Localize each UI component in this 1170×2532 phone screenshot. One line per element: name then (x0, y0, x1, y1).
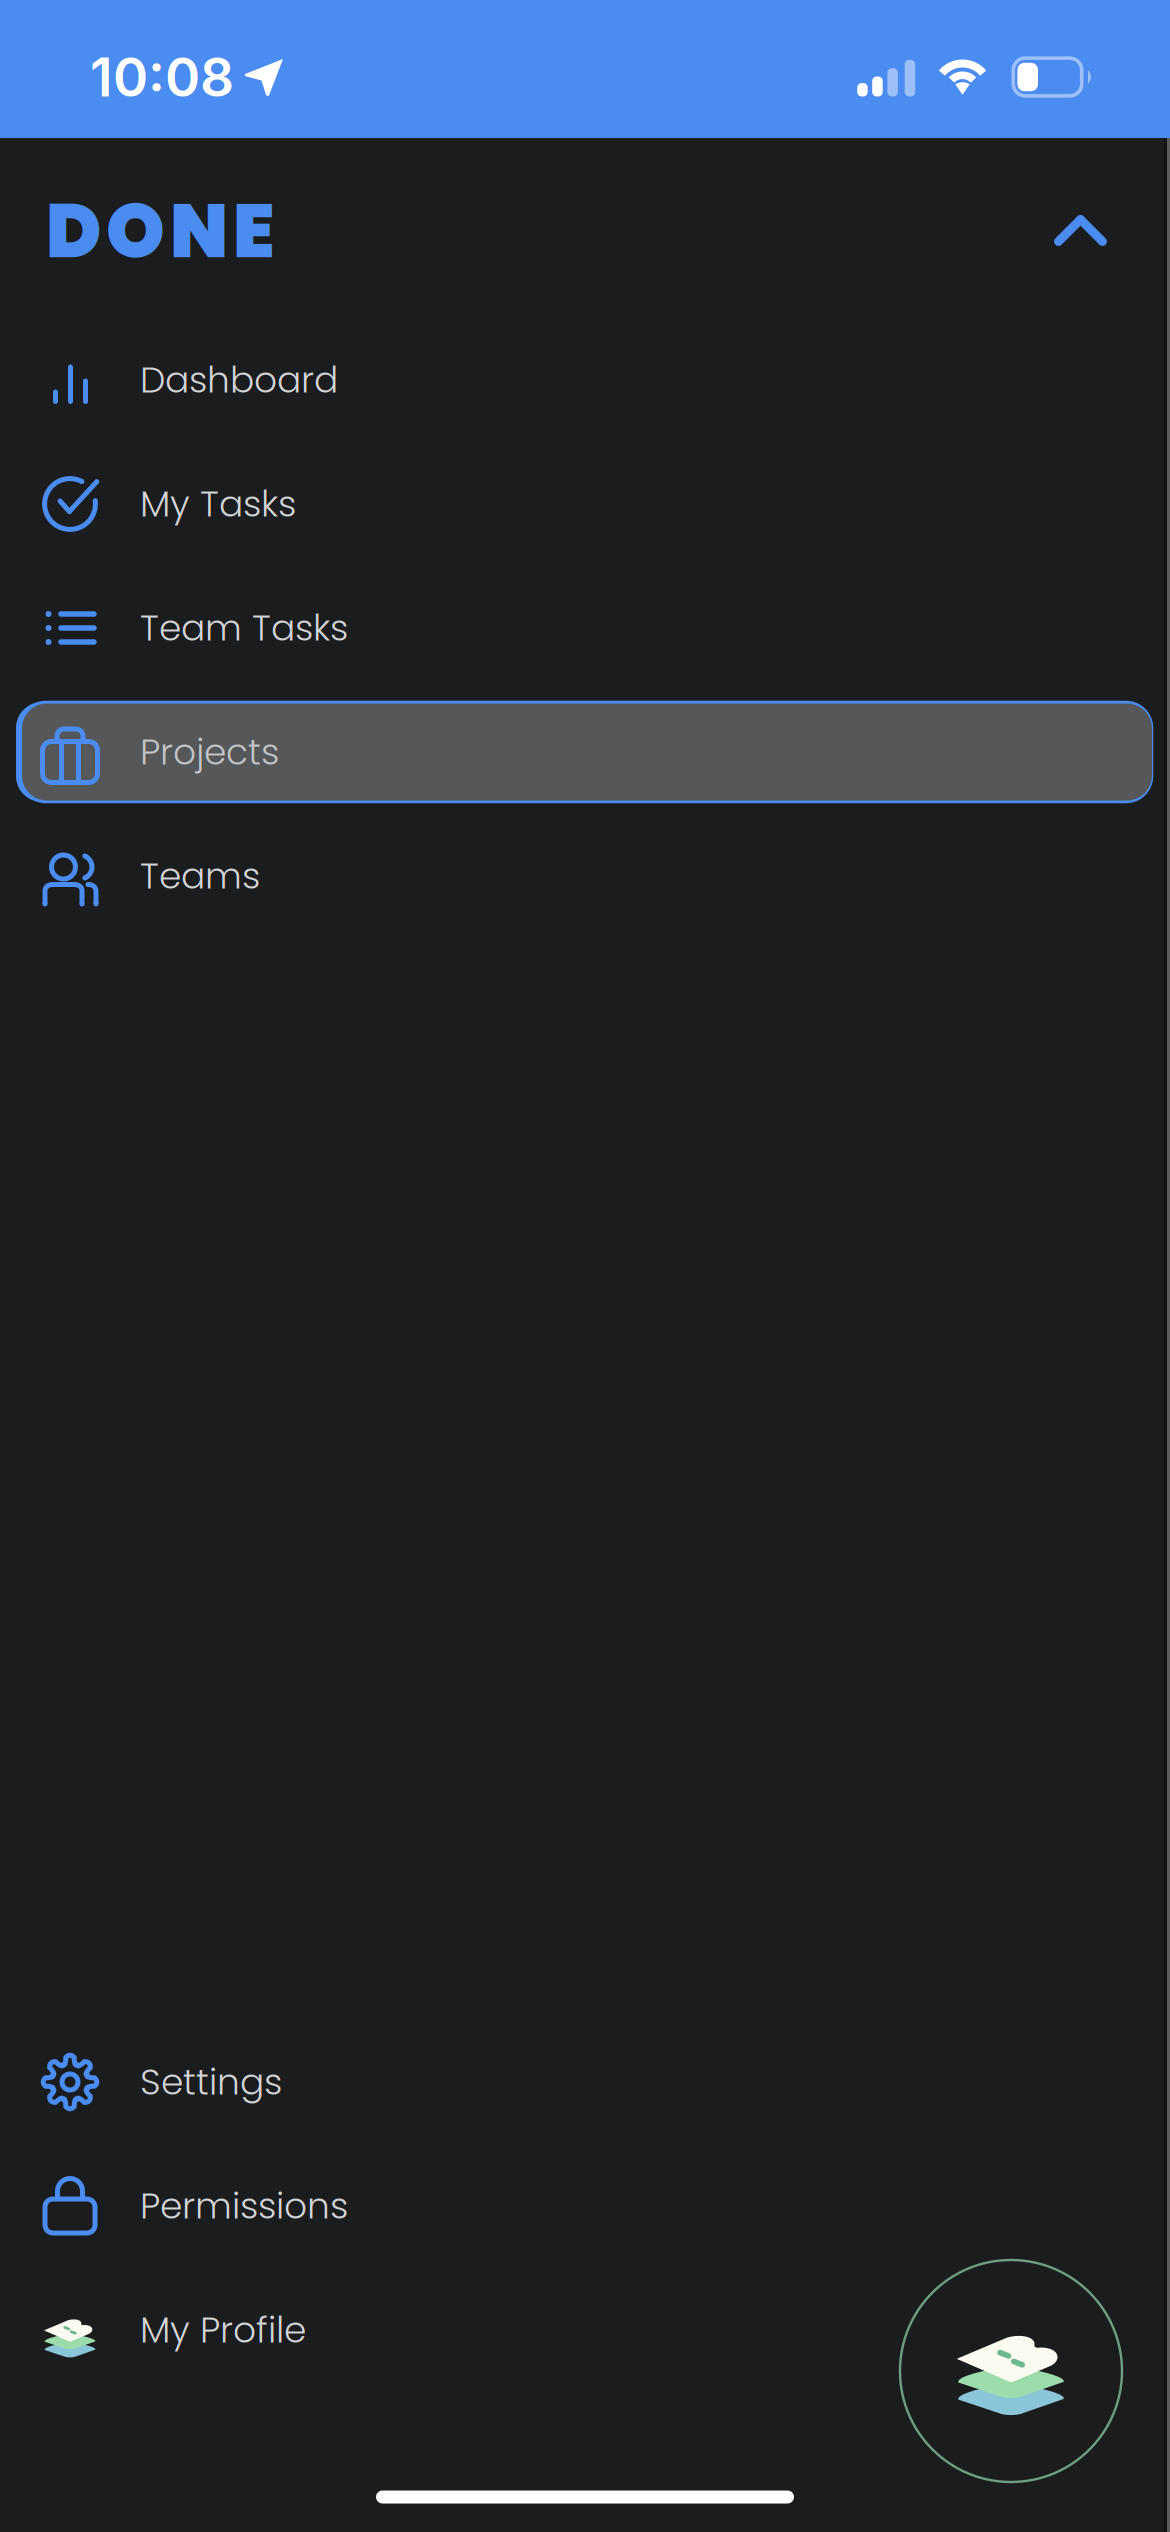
staticText: Dashboard (140, 355, 338, 405)
staticText: DONE (46, 179, 275, 283)
button[interactable]: Collapse menu (1012, 173, 1152, 313)
button[interactable]: Brand logo (900, 2250, 1122, 2482)
staticText: Settings (140, 2057, 282, 2107)
button[interactable]: Settings (0, 2020, 1170, 2144)
button[interactable]: My Tasks (0, 442, 1170, 566)
staticText: My Profile (140, 2305, 306, 2355)
button[interactable]: Permissions (0, 2144, 1170, 2268)
staticText: Permissions (140, 2181, 348, 2231)
staticText: Team Tasks (140, 603, 348, 653)
button[interactable]: Teams (0, 814, 1170, 938)
staticText: Projects (140, 727, 279, 777)
button[interactable]: Team Tasks (0, 566, 1170, 690)
button[interactable]: Dashboard (0, 318, 1170, 442)
button[interactable]: Projects (0, 690, 1170, 814)
staticText: 10:08 (90, 45, 234, 109)
staticText: Teams (140, 851, 260, 901)
button[interactable]: My Profile (0, 2268, 1170, 2392)
staticText: My Tasks (140, 479, 296, 529)
